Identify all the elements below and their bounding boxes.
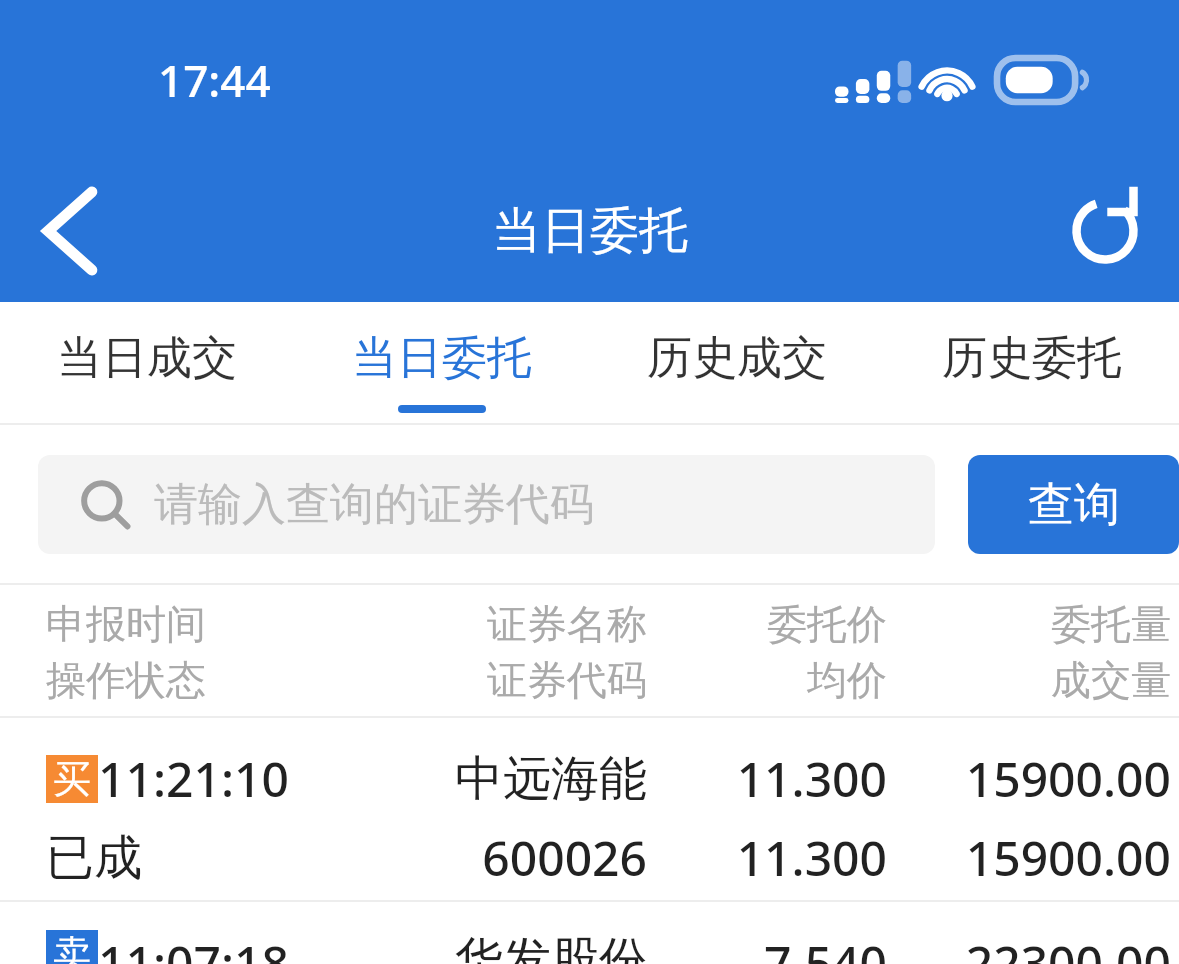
staticText: 历史委托 xyxy=(942,330,1122,387)
staticText: 已成 xyxy=(46,828,142,888)
button[interactable]: 查询 xyxy=(968,455,1179,554)
staticText: 请输入查询的证券代码 xyxy=(154,477,594,532)
staticText: 中远海能 xyxy=(455,749,647,809)
staticText: 当日委托 xyxy=(352,330,532,387)
staticText: 申报时间 xyxy=(46,599,206,649)
staticText: 15900.00 xyxy=(965,825,1171,890)
button[interactable]: 历史委托 xyxy=(884,302,1179,425)
button[interactable]: 当日成交 xyxy=(0,302,294,425)
staticText: 600026 xyxy=(482,825,647,890)
staticText: 11:07:18 xyxy=(98,930,289,964)
button[interactable]: Refresh xyxy=(1049,175,1161,287)
staticText: 7.540 xyxy=(764,930,887,964)
staticText: 17:44 xyxy=(158,50,271,110)
button[interactable]: 请输入查询的证券代码 xyxy=(38,455,935,554)
staticText: 买 xyxy=(53,755,91,803)
button[interactable]: 历史成交 xyxy=(589,302,884,425)
button[interactable]: 卖 xyxy=(0,902,1179,964)
staticText: 委托价 xyxy=(767,599,887,649)
staticText: 11.300 xyxy=(736,746,887,811)
staticText: 查询 xyxy=(1028,476,1120,534)
staticText: 华发股份 xyxy=(455,930,647,964)
staticText: 委托量 xyxy=(1051,599,1171,649)
staticText: 当日成交 xyxy=(57,330,237,387)
button[interactable]: Back xyxy=(14,175,126,287)
staticText: 均价 xyxy=(807,655,887,705)
staticText: 成交量 xyxy=(1051,655,1171,705)
button[interactable]: 买 xyxy=(0,718,1179,900)
staticText: 22300.00 xyxy=(965,930,1171,964)
staticText: 卖 xyxy=(53,930,91,964)
staticText: 证券名称 xyxy=(487,599,647,649)
staticText: 历史成交 xyxy=(647,330,827,387)
staticText: 15900.00 xyxy=(965,746,1171,811)
staticText: 当日委托 xyxy=(492,200,688,262)
staticText: 11:21:10 xyxy=(98,746,289,811)
staticText: 11.300 xyxy=(736,825,887,890)
button[interactable]: 当日委托 xyxy=(294,302,589,425)
staticText: 操作状态 xyxy=(46,655,206,705)
staticText: 证券代码 xyxy=(487,655,647,705)
